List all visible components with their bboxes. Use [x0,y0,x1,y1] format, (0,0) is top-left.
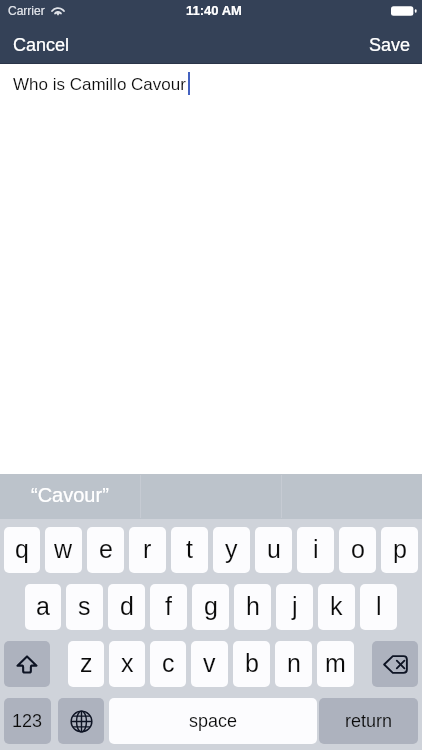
button[interactable]: t [171,527,208,573]
staticText: Who is Camillo Cavour [13,75,186,94]
button[interactable]: m [317,641,354,687]
staticText: d [120,592,134,620]
button[interactable]: y [213,527,250,573]
button[interactable]: f [150,584,187,630]
staticText: y [225,535,238,563]
staticText: n [287,649,301,677]
staticText: h [246,592,260,620]
staticText: f [165,592,172,620]
button[interactable]: j [276,584,313,630]
button[interactable]: o [339,527,376,573]
button[interactable]: n [275,641,312,687]
staticText: x [121,649,134,677]
staticText: 123 [12,711,43,731]
staticText: 11:40 AM [186,3,242,18]
staticText: v [203,649,216,677]
button[interactable]: Cancel [0,24,82,62]
button[interactable]: Switch keyboard [58,698,104,744]
staticText: k [330,592,343,620]
staticText: t [186,535,193,563]
button[interactable]: 123 [4,698,51,744]
button[interactable]: x [109,641,145,687]
button[interactable]: q [4,527,40,573]
staticText: e [99,535,113,563]
staticText: u [267,535,281,563]
button[interactable]: h [234,584,271,630]
button[interactable]: c [150,641,186,687]
button[interactable]: g [192,584,229,630]
staticText: l [376,592,382,620]
staticText: w [54,535,73,563]
button[interactable]: k [318,584,355,630]
button[interactable]: Backspace [372,641,418,687]
staticText: Carrier [8,4,45,17]
staticText: p [393,535,407,563]
staticText: Save [369,35,411,55]
staticText: g [204,592,218,620]
button[interactable]: r [129,527,166,573]
staticText: q [15,535,29,563]
staticText: z [80,649,93,677]
button[interactable]: b [233,641,270,687]
button[interactable]: Save [357,24,422,62]
button[interactable]: Shift [4,641,50,687]
staticText: Cancel [13,35,70,55]
staticText: m [325,649,346,677]
button[interactable]: return [319,698,418,744]
button[interactable]: i [297,527,334,573]
button[interactable]: a [25,584,61,630]
button[interactable]: z [68,641,104,687]
button[interactable]: w [45,527,82,573]
button[interactable]: u [255,527,292,573]
staticText: “Cavour” [31,484,109,506]
button[interactable]: p [381,527,418,573]
staticText: s [78,592,91,620]
button[interactable]: e [87,527,124,573]
staticText: a [36,592,50,620]
button[interactable]: space [109,698,317,744]
staticText: r [143,535,152,563]
staticText: j [292,592,298,620]
button[interactable]: v [191,641,228,687]
staticText: b [245,649,259,677]
button[interactable]: l [360,584,397,630]
staticText: return [345,711,393,731]
staticText: i [313,535,319,563]
button[interactable]: “Cavour” [0,474,140,519]
button[interactable]: s [66,584,103,630]
staticText: c [162,649,175,677]
button[interactable]: d [108,584,145,630]
staticText: o [351,535,365,563]
staticText: space [189,711,238,731]
